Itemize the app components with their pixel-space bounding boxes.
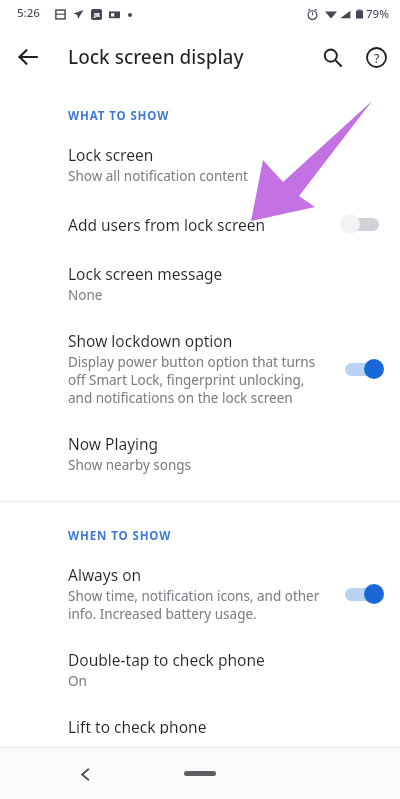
button[interactable]: Always on [0, 551, 400, 636]
staticText: Show all notification content [68, 167, 248, 185]
staticText: JR [94, 11, 100, 19]
button[interactable]: Toggle [340, 581, 384, 607]
staticText: Add users from lock screen [68, 214, 266, 235]
button[interactable]: Home [184, 771, 216, 776]
button[interactable]: Now Playing [0, 420, 400, 487]
staticText: Lift to check phone [68, 716, 207, 734]
staticText: Lock screen [68, 144, 154, 165]
staticText: Show lockdown option [68, 330, 233, 351]
staticText: Now Playing [68, 433, 159, 454]
staticText: Display power button option that turns o… [68, 353, 328, 407]
button[interactable]: Show lockdown option [0, 317, 400, 420]
button[interactable]: Toggle [340, 356, 384, 382]
button[interactable]: Lift to check phone [0, 703, 400, 747]
staticText: WHEN TO SHOW [68, 528, 172, 544]
staticText: Lock screen display [68, 44, 244, 70]
button[interactable]: Double-tap to check phone [0, 636, 400, 703]
staticText: 79% [366, 6, 389, 22]
staticText: Double-tap to check phone [68, 649, 265, 670]
staticText: ? [374, 50, 380, 66]
button[interactable]: Lock screen [0, 131, 400, 198]
staticText: On [68, 672, 87, 690]
button[interactable]: Toggle [340, 211, 384, 237]
button[interactable]: Lock screen message [0, 250, 400, 317]
staticText: None [68, 286, 103, 304]
staticText: Show nearby songs [68, 456, 192, 474]
button[interactable]: Back [9, 38, 47, 76]
button[interactable]: Add users from lock screen [0, 198, 400, 250]
button[interactable]: Back [68, 757, 102, 791]
staticText: Always on [68, 564, 142, 585]
staticText: 5:26 [17, 5, 40, 21]
staticText: Show time, notification icons, and other… [68, 587, 328, 623]
staticText: WHAT TO SHOW [68, 108, 170, 124]
staticText: Lock screen message [68, 263, 223, 284]
button[interactable]: Search [312, 37, 352, 77]
button[interactable]: Help [356, 37, 396, 77]
